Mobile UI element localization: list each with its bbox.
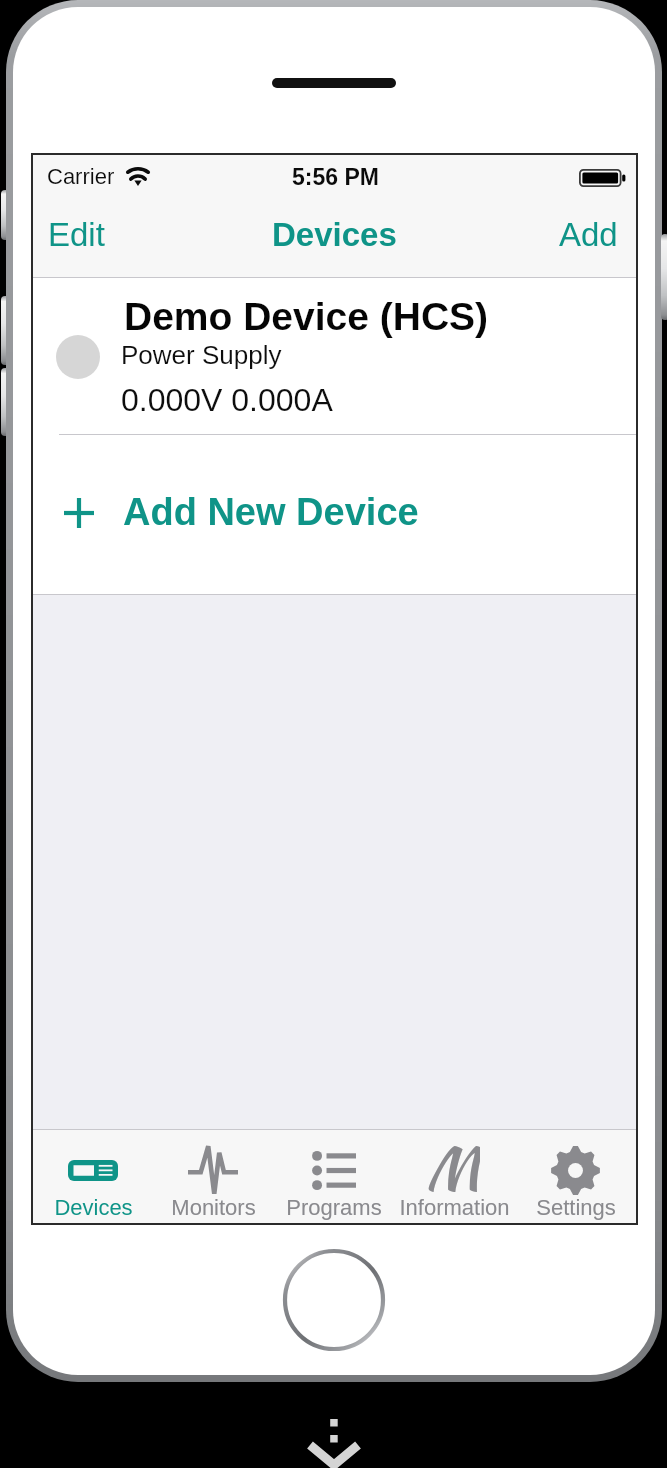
staticText: 0.000V 0.000A <box>121 382 333 418</box>
staticText: Settings <box>536 1195 616 1220</box>
button[interactable]: Settings <box>515 1130 636 1223</box>
staticText: Power Supply <box>121 340 282 369</box>
staticText: Add New Device <box>123 491 419 533</box>
button[interactable]: Programs <box>273 1130 394 1223</box>
staticText: 5:56 PM <box>292 164 379 190</box>
staticText: Monitors <box>171 1195 256 1220</box>
button[interactable]: M <box>394 1130 515 1223</box>
staticText: Devices <box>272 216 397 253</box>
button[interactable]: Demo Device (HCS) <box>33 278 636 435</box>
staticText: Carrier <box>47 164 115 189</box>
button[interactable]: Edit <box>33 193 128 278</box>
staticText: Add <box>559 216 618 253</box>
staticText: Devices <box>54 1195 133 1220</box>
staticText: Information <box>399 1195 510 1220</box>
staticText: M <box>426 1126 480 1206</box>
staticText: Demo Device (HCS) <box>124 295 489 339</box>
button[interactable]: Devices <box>33 1130 153 1223</box>
button[interactable]: Add <box>539 193 636 278</box>
button[interactable]: Add New Device <box>33 435 636 595</box>
button[interactable]: Monitors <box>153 1130 273 1223</box>
staticText: Edit <box>48 216 105 253</box>
staticText: Programs <box>286 1195 382 1220</box>
